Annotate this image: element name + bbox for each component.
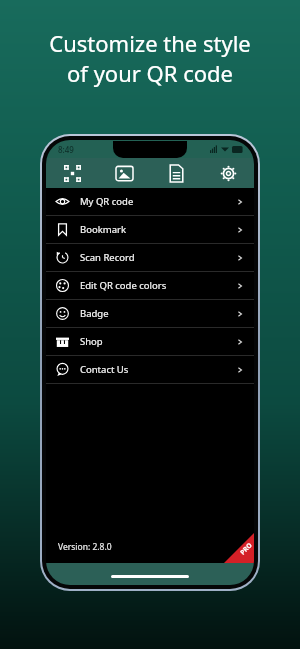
button[interactable]: Settings (202, 158, 254, 188)
staticText: Bookmark (80, 223, 126, 236)
staticText: Badge (80, 307, 109, 320)
button[interactable]: Badge (46, 300, 254, 327)
staticText: Customize the style of your QR code (0, 28, 300, 88)
staticText: Contact Us (80, 363, 129, 376)
button[interactable]: Scan QR code (46, 158, 98, 188)
button[interactable]: Edit QR code colors (46, 272, 254, 299)
button[interactable]: Documents (150, 158, 202, 188)
staticText: Shop (80, 335, 103, 348)
button[interactable]: Shop (46, 328, 254, 355)
staticText: 8:49 (58, 144, 74, 155)
staticText: Scan Record (80, 251, 135, 264)
staticText: My QR code (80, 195, 134, 208)
button[interactable]: My QR code (46, 188, 254, 215)
button[interactable]: Bookmark (46, 216, 254, 243)
button[interactable]: Contact Us (46, 356, 254, 383)
staticText: Edit QR code colors (80, 279, 167, 292)
button[interactable]: Gallery (98, 158, 150, 188)
staticText: PRO (238, 540, 254, 557)
button[interactable]: Scan Record (46, 244, 254, 271)
staticText: Version: 2.8.0 (58, 541, 112, 553)
